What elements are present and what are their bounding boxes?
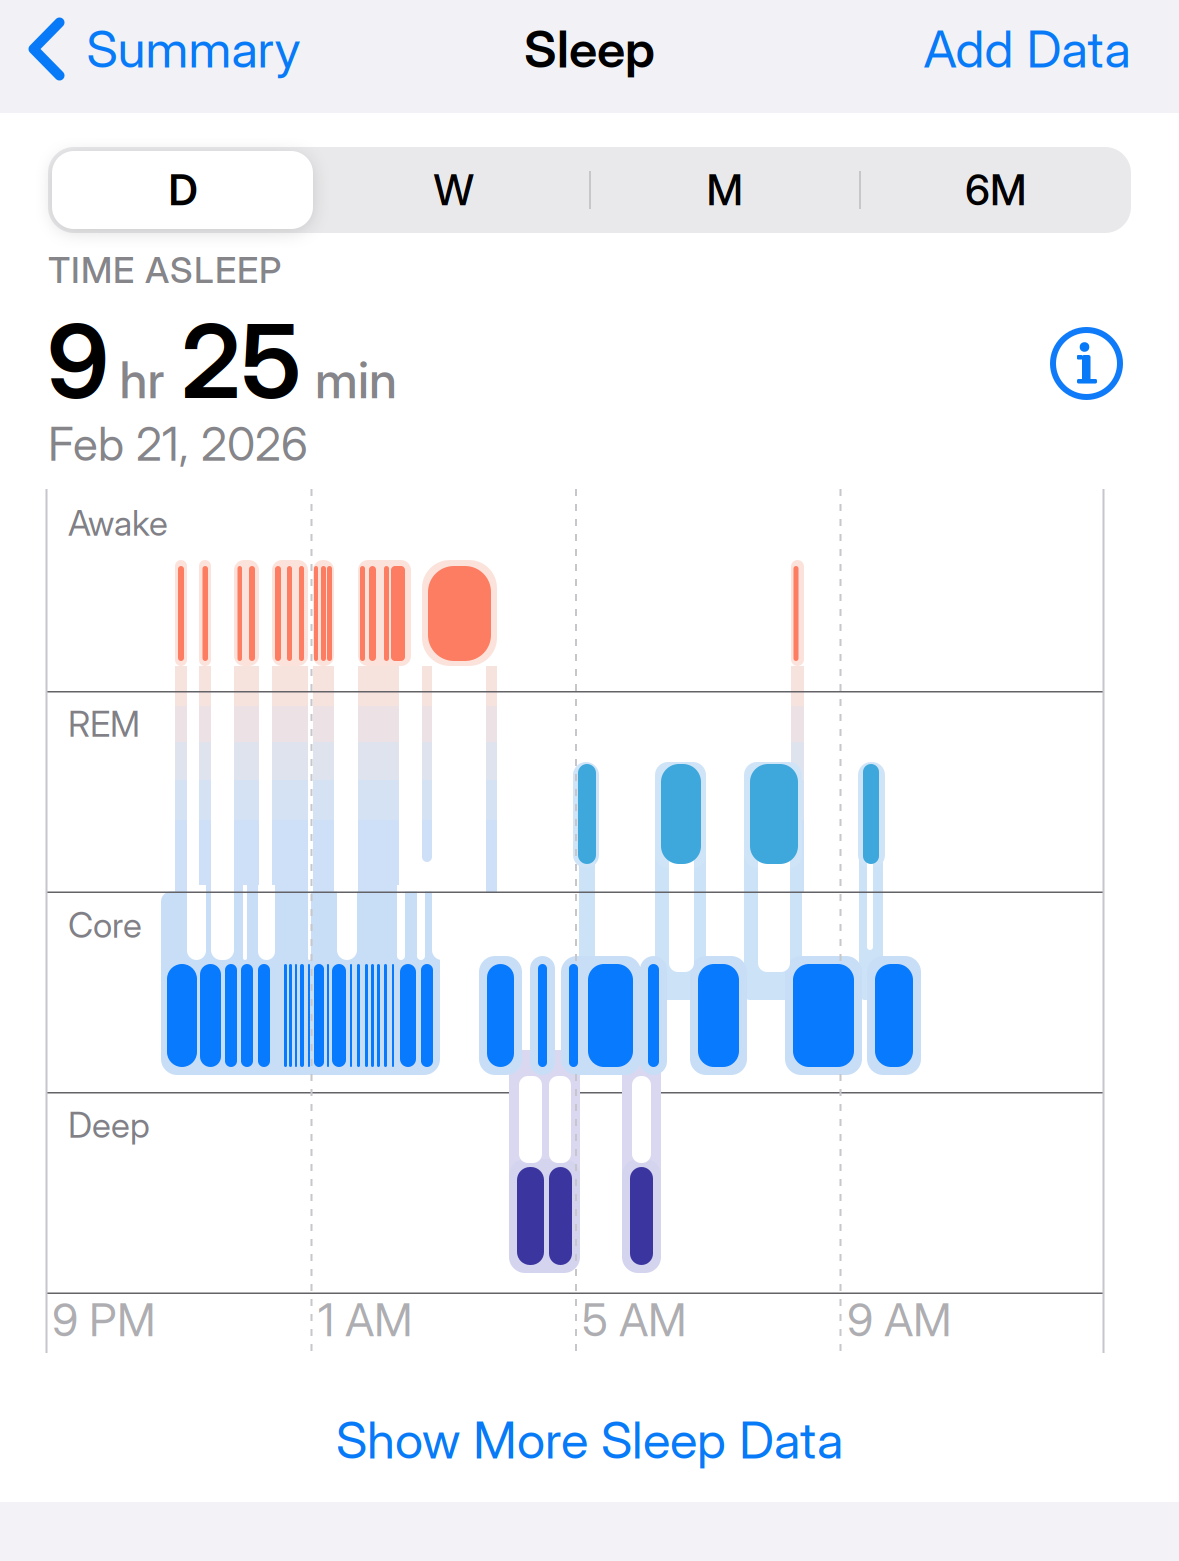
staticText: 1 AM	[318, 1293, 413, 1347]
staticText: M	[706, 165, 743, 215]
staticText: hr	[119, 350, 164, 410]
staticText: Summary	[86, 18, 300, 80]
staticText: W	[433, 165, 474, 215]
staticText: Show More Sleep Data	[336, 1409, 843, 1471]
staticText: 25	[181, 299, 301, 423]
staticText: Deep	[68, 1104, 150, 1146]
staticText: 9 PM	[52, 1293, 156, 1347]
staticText: Add Data	[923, 18, 1130, 80]
staticText: Core	[68, 904, 142, 946]
staticText: Feb 21, 2026	[48, 416, 308, 472]
button[interactable]: Summary	[31, 18, 300, 80]
staticText: 9	[47, 299, 109, 423]
button[interactable]: 6M	[866, 147, 1126, 233]
button[interactable]: D	[53, 147, 313, 233]
staticText: D	[168, 165, 197, 215]
staticText: Sleep	[524, 18, 655, 80]
button[interactable]: M	[595, 147, 855, 233]
button[interactable]: Show More Sleep Data	[336, 1409, 843, 1471]
staticText: 9 AM	[847, 1293, 952, 1347]
button[interactable]	[1048, 325, 1124, 401]
staticText: Awake	[68, 502, 168, 544]
staticText: 6M	[965, 165, 1027, 215]
staticText: 5 AM	[582, 1293, 687, 1347]
staticText: TIME ASLEEP	[48, 248, 281, 292]
button[interactable]: W	[324, 147, 584, 233]
staticText: min	[315, 350, 397, 410]
staticText: REM	[68, 703, 140, 745]
button[interactable]: Add Data	[923, 18, 1130, 80]
